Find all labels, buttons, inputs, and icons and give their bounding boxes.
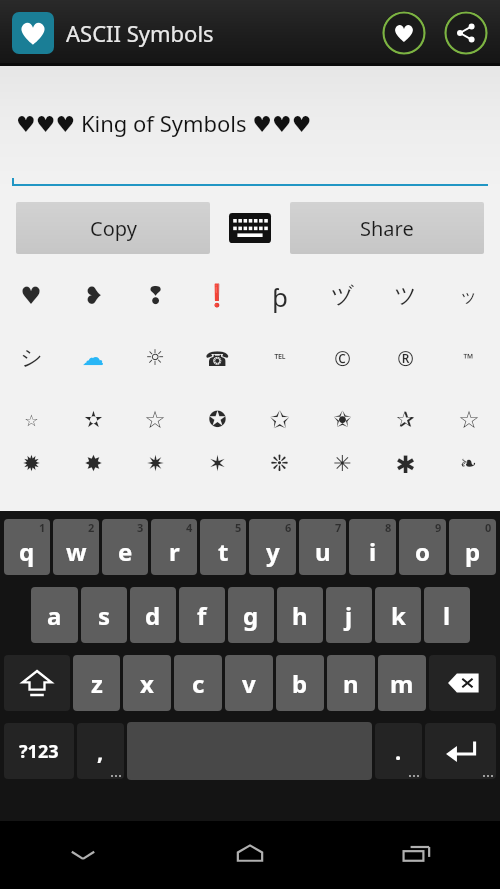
button[interactable]: ❧ bbox=[437, 451, 500, 491]
staticText: ☁ bbox=[82, 345, 104, 371]
button[interactable]: b bbox=[276, 655, 324, 711]
button[interactable]: ® bbox=[374, 327, 437, 389]
button[interactable]: 6 bbox=[249, 519, 296, 575]
staticText: b bbox=[292, 667, 308, 700]
button[interactable]: v bbox=[225, 655, 273, 711]
button[interactable]: 7 bbox=[299, 519, 346, 575]
button[interactable]: Share bbox=[444, 11, 488, 55]
button[interactable]: ❊ bbox=[248, 451, 311, 491]
button[interactable]: ☁ bbox=[62, 327, 124, 389]
button[interactable]: シ bbox=[0, 327, 62, 389]
staticText: ✩ bbox=[269, 406, 290, 434]
button[interactable]: ✳ bbox=[311, 451, 374, 491]
button[interactable]: 3 bbox=[102, 519, 148, 575]
button[interactable]: ♥ bbox=[0, 265, 62, 327]
staticText: i bbox=[369, 535, 377, 568]
staticText: f bbox=[197, 599, 207, 632]
button[interactable]: l bbox=[424, 587, 470, 643]
staticText: q bbox=[19, 535, 35, 568]
staticText: ✸ bbox=[84, 451, 103, 477]
button[interactable]: . bbox=[375, 723, 422, 779]
button[interactable]: Hide keyboard bbox=[0, 821, 166, 889]
staticText: s bbox=[98, 599, 111, 632]
button[interactable]: Shift bbox=[4, 655, 70, 711]
staticText: ☆ bbox=[458, 406, 480, 434]
button[interactable]: ❗ bbox=[186, 265, 248, 327]
button[interactable]: ☆ bbox=[0, 389, 62, 451]
staticText: h bbox=[292, 599, 308, 632]
button[interactable]: h bbox=[277, 587, 323, 643]
staticText: e bbox=[118, 535, 133, 568]
button[interactable]: ツ bbox=[374, 265, 437, 327]
button[interactable]: ✷ bbox=[124, 451, 186, 491]
button[interactable]: ✱ bbox=[374, 451, 437, 491]
button[interactable]: ✩ bbox=[248, 389, 311, 451]
staticText: ☎ bbox=[205, 347, 230, 370]
staticText: ?123 bbox=[19, 739, 59, 764]
staticText: ℡ bbox=[274, 349, 286, 368]
button[interactable]: m bbox=[378, 655, 426, 711]
button[interactable]: d bbox=[130, 587, 176, 643]
staticText: g bbox=[243, 599, 259, 632]
button[interactable]: f bbox=[179, 587, 225, 643]
button[interactable]: ?123 bbox=[4, 723, 74, 779]
button[interactable]: ƥ bbox=[248, 265, 311, 327]
button[interactable]: g bbox=[228, 587, 274, 643]
button[interactable]: ☼ bbox=[124, 327, 186, 389]
button[interactable]: ☆ bbox=[124, 389, 186, 451]
button[interactable]: Show keyboard bbox=[224, 202, 276, 254]
staticText: ❢ bbox=[145, 282, 166, 310]
button[interactable]: Recents bbox=[333, 821, 500, 889]
button[interactable]: x bbox=[123, 655, 171, 711]
button[interactable]: Share bbox=[290, 202, 484, 254]
button[interactable]: Backspace bbox=[429, 655, 496, 711]
staticText: 6 bbox=[285, 520, 292, 535]
button[interactable]: Copy bbox=[16, 202, 210, 254]
button[interactable]: ✬ bbox=[311, 389, 374, 451]
button[interactable]: 5 bbox=[200, 519, 246, 575]
button[interactable]: 8 bbox=[349, 519, 396, 575]
button[interactable]: ☎ bbox=[186, 327, 248, 389]
button[interactable]: ™ bbox=[437, 327, 500, 389]
button[interactable]: 4 bbox=[151, 519, 197, 575]
button[interactable]: ✫ bbox=[62, 389, 124, 451]
staticText: ❥ bbox=[83, 282, 104, 310]
button[interactable]: ✰ bbox=[374, 389, 437, 451]
button[interactable]: Home bbox=[166, 821, 333, 889]
button[interactable]: c bbox=[174, 655, 222, 711]
staticText: 5 bbox=[235, 520, 242, 535]
button[interactable]: 1 bbox=[4, 519, 50, 575]
button[interactable]: ッ bbox=[437, 265, 500, 327]
button[interactable]: j bbox=[326, 587, 372, 643]
button[interactable]: k bbox=[375, 587, 421, 643]
staticText: 2 bbox=[88, 520, 95, 535]
staticText: 0 bbox=[485, 520, 492, 535]
button[interactable]: © bbox=[311, 327, 374, 389]
button[interactable]: ☆ bbox=[437, 389, 500, 451]
button[interactable]: Favorite bbox=[382, 11, 426, 55]
button[interactable]: a bbox=[31, 587, 78, 643]
button[interactable]: ℡ bbox=[248, 327, 311, 389]
staticText: ✱ bbox=[395, 451, 416, 479]
button[interactable]: Enter bbox=[425, 723, 496, 779]
button[interactable]: ✪ bbox=[186, 389, 248, 451]
button[interactable]: ✶ bbox=[186, 451, 248, 491]
button[interactable]: ✹ bbox=[0, 451, 62, 491]
button[interactable]: z bbox=[73, 655, 120, 711]
button[interactable]: ヅ bbox=[311, 265, 374, 327]
button[interactable]: n bbox=[327, 655, 375, 711]
staticText: ASCII Symbols bbox=[66, 18, 214, 48]
button[interactable]: 0 bbox=[449, 519, 496, 575]
button[interactable]: 9 bbox=[399, 519, 446, 575]
staticText: ƥ bbox=[272, 279, 288, 314]
button[interactable]: , bbox=[77, 723, 124, 779]
button[interactable]: s bbox=[81, 587, 127, 643]
button[interactable]: ❥ bbox=[62, 265, 124, 327]
button[interactable]: ❢ bbox=[124, 265, 186, 327]
staticText: 9 bbox=[435, 520, 442, 535]
staticText: Copy bbox=[90, 215, 137, 242]
button[interactable]: ✸ bbox=[62, 451, 124, 491]
button[interactable]: 2 bbox=[53, 519, 99, 575]
staticText: ✶ bbox=[208, 451, 227, 477]
